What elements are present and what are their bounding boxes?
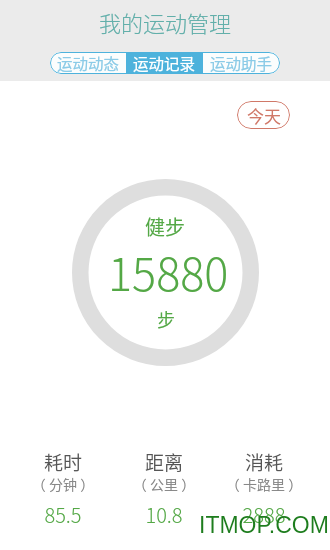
staticText: 我的运动管理	[99, 6, 232, 38]
button[interactable]: 运动动态	[50, 52, 126, 74]
staticText: 运动动态	[57, 52, 120, 74]
button[interactable]: 运动记录	[126, 52, 203, 74]
button[interactable]: 运动助手	[203, 52, 280, 74]
staticText: 2888	[214, 500, 314, 529]
staticText: 85.5	[13, 500, 113, 529]
staticText: 步	[157, 306, 175, 332]
staticText: ITMOP.COM	[199, 512, 329, 538]
button[interactable]: 今天	[237, 101, 290, 129]
staticText: 耗时	[13, 448, 113, 476]
staticText: 健步	[145, 212, 185, 241]
staticText: 距离	[114, 448, 214, 476]
staticText: （ 分钟 ）	[13, 474, 113, 494]
staticText: 今天	[247, 103, 281, 128]
staticText: 10.8	[114, 500, 214, 529]
button[interactable]	[72, 179, 259, 366]
staticText: 运动助手	[210, 52, 273, 74]
staticText: 消耗	[214, 448, 314, 476]
staticText: （ 卡路里 ）	[214, 474, 314, 494]
staticText: （ 公里 ）	[114, 474, 214, 494]
staticText: 15880	[108, 239, 229, 304]
staticText: 运动记录	[133, 52, 196, 74]
